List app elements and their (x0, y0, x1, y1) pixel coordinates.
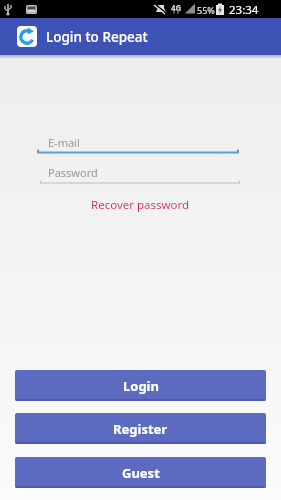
button[interactable]: Recover password (91, 197, 190, 213)
button[interactable]: Password (40, 162, 240, 184)
button[interactable]: Login (15, 370, 266, 401)
staticText: 4G (171, 2, 182, 13)
staticText: E-mail (48, 135, 80, 150)
staticText: Recover password (91, 197, 190, 213)
staticText: Register (113, 420, 168, 438)
staticText: 55% (197, 4, 215, 16)
staticText: Login to Repeat (46, 28, 148, 46)
staticText: Login (123, 377, 159, 395)
button[interactable]: Guest (15, 457, 266, 488)
button[interactable]: E-mail (37, 132, 239, 155)
button[interactable]: Register (15, 413, 266, 444)
staticText: Guest (122, 464, 160, 482)
staticText: Password (48, 165, 98, 180)
staticText: 23:34 (229, 2, 259, 18)
